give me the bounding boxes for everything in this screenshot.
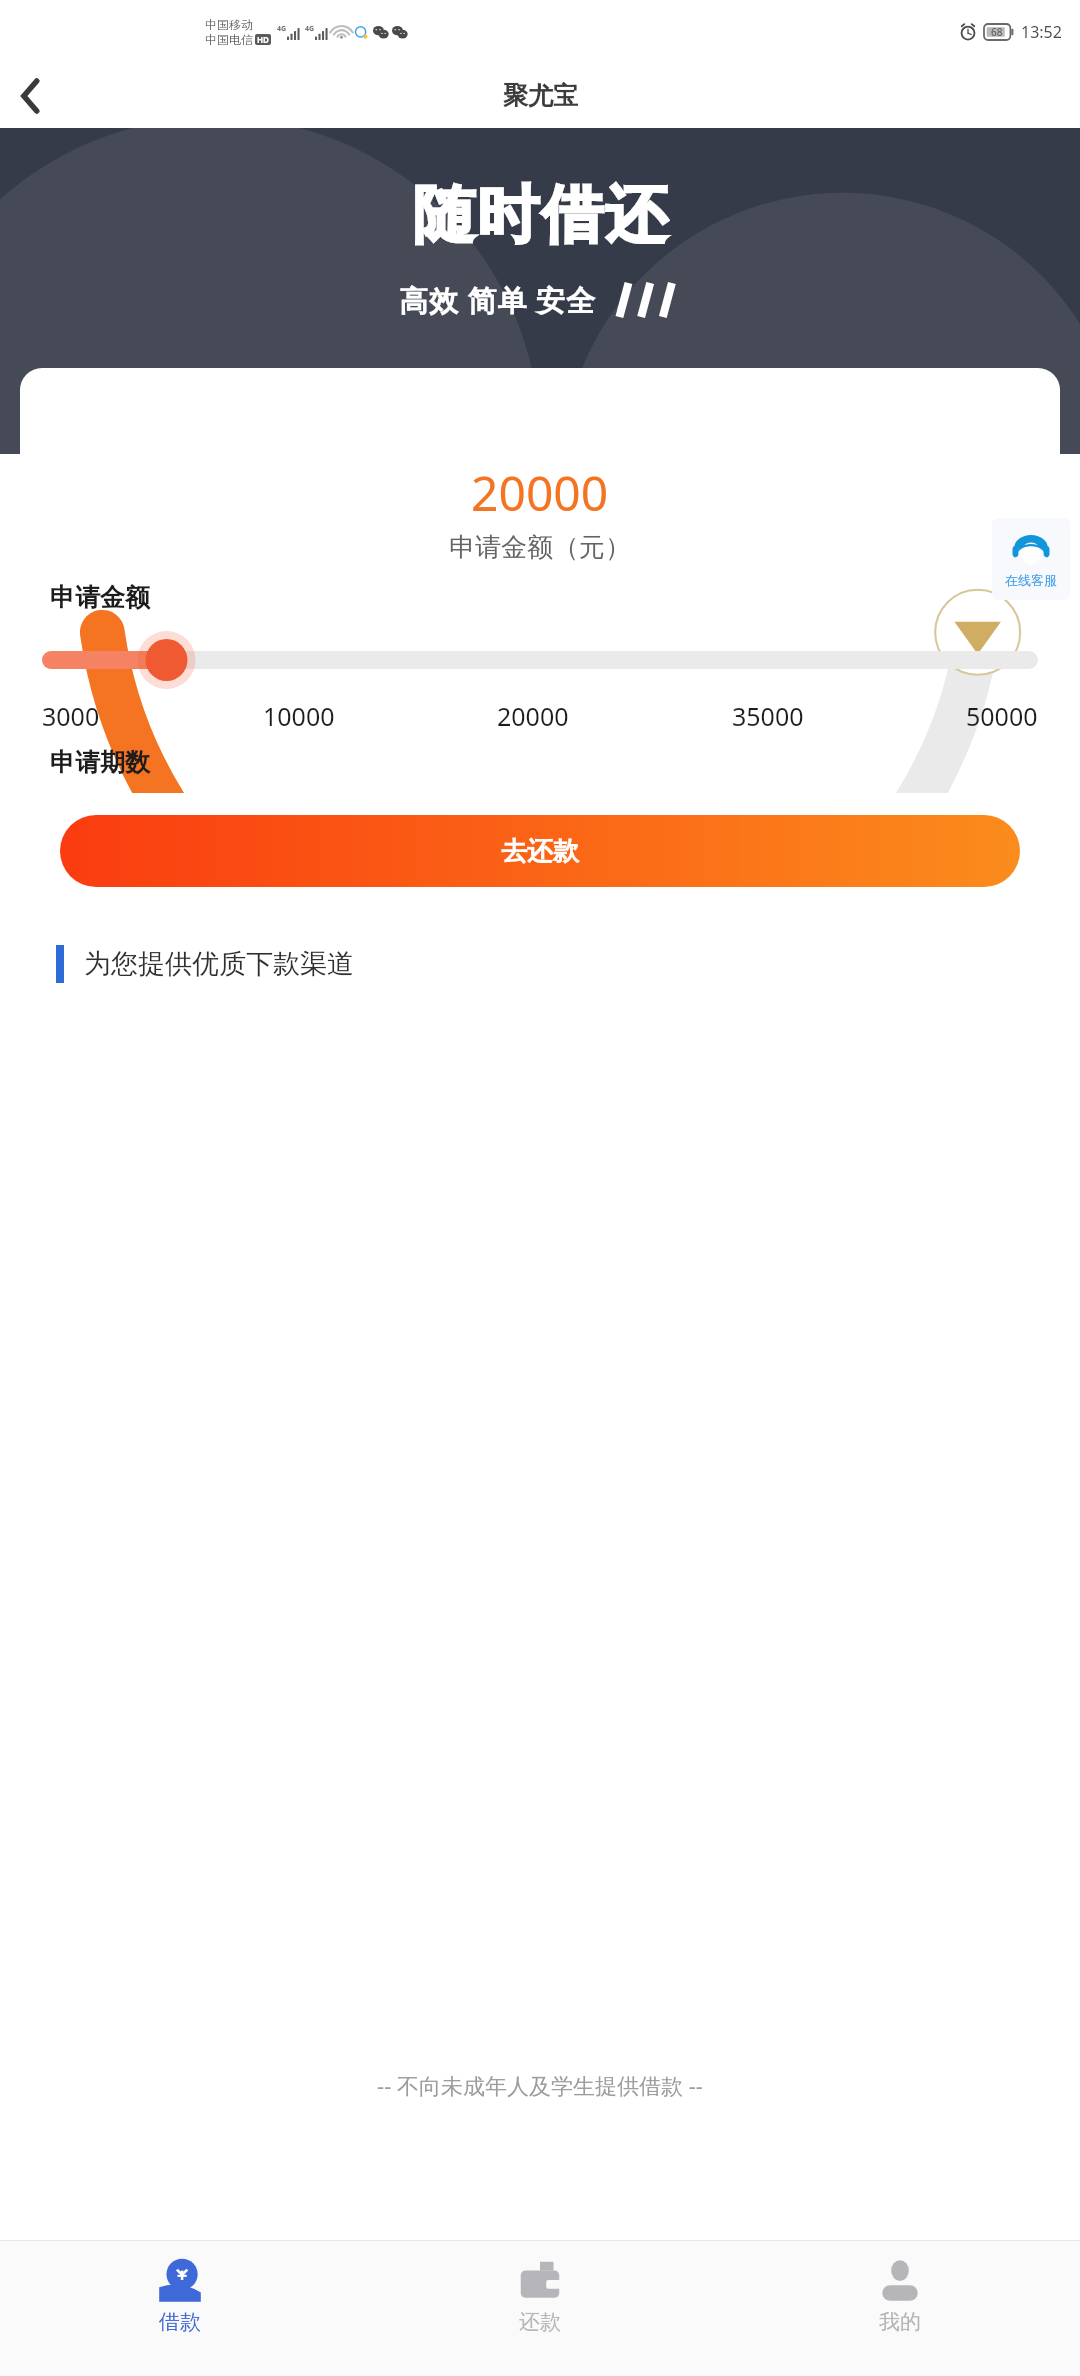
staticText: -- 不向未成年人及学生提供借款 -- — [377, 2070, 703, 2100]
button[interactable]: 3000 — [38, 697, 104, 735]
staticText: 13:52 — [1021, 21, 1062, 43]
staticText: 借款 — [159, 2309, 201, 2335]
staticText: 68 — [991, 25, 1003, 39]
button[interactable]: 还款 — [360, 2241, 720, 2376]
staticText: 50000 — [966, 699, 1038, 733]
button[interactable]: 10000 — [259, 697, 339, 735]
staticText: 3000 — [42, 699, 100, 733]
staticText: 我的 — [879, 2309, 921, 2335]
staticText: 申请期数 — [50, 747, 150, 778]
button[interactable]: 50000 — [962, 697, 1042, 735]
staticText: 去还款 — [501, 835, 579, 868]
staticText: 中国移动 — [205, 17, 253, 32]
button[interactable]: 借款 — [0, 2241, 360, 2376]
staticText: 为您提供优质下款渠道 — [84, 947, 354, 981]
staticText: 在线客服 — [1005, 572, 1057, 588]
button[interactable]: 35000 — [728, 697, 808, 735]
button[interactable]: 我的 — [720, 2241, 1080, 2376]
button[interactable] — [42, 639, 1038, 681]
staticText: 随时借还 — [412, 176, 668, 254]
staticText: 聚尤宝 — [503, 80, 578, 111]
staticText: 20000 — [471, 460, 609, 525]
button[interactable]: Back — [0, 65, 62, 127]
staticText: 中国电信 — [205, 32, 253, 47]
button[interactable]: 在线客服 — [992, 518, 1070, 600]
staticText: HD — [257, 34, 269, 45]
staticText: 4G — [277, 24, 287, 34]
button[interactable]: 20000 — [493, 697, 573, 735]
staticText: 35000 — [732, 699, 804, 733]
staticText: 4G — [305, 24, 315, 34]
staticText: 申请金额（元） — [449, 531, 631, 564]
staticText: 还款 — [519, 2309, 561, 2335]
staticText: 高效 简单 安全 — [399, 280, 597, 320]
staticText: 10000 — [263, 699, 335, 733]
staticText: 20000 — [497, 699, 569, 733]
button[interactable]: 去还款 — [60, 815, 1020, 887]
staticText: 申请金额 — [50, 582, 150, 613]
